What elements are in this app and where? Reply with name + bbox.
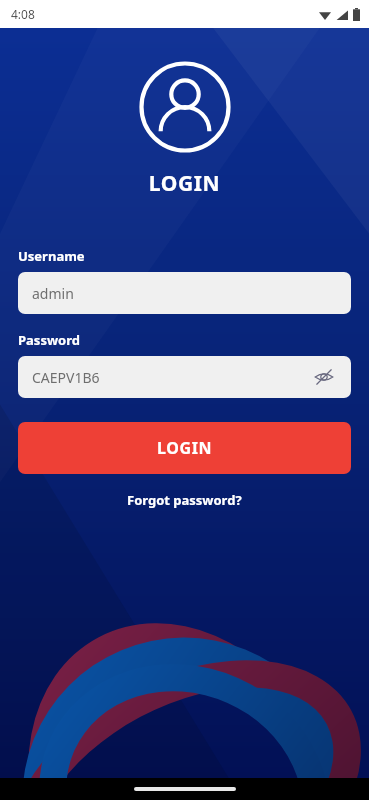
staticText: LOGIN [0,169,369,198]
button[interactable]: Forgot password? [18,491,351,509]
staticText: 4:08 [11,6,35,22]
staticText: admin [32,284,74,303]
button[interactable]: LOGIN [18,422,351,474]
button[interactable]: Show password [311,364,337,390]
staticText: LOGIN [157,437,213,459]
staticText: Password [18,331,80,349]
button[interactable]: admin [18,272,351,314]
staticText: CAEPV1B6 [32,368,100,387]
button[interactable]: CAEPV1B6 [18,356,351,398]
staticText: Username [18,247,85,265]
staticText: Forgot password? [127,491,242,509]
